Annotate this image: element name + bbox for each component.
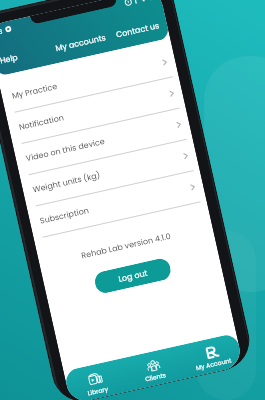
staticText: Library	[87, 384, 109, 397]
button[interactable]: My Account	[186, 341, 238, 373]
button[interactable]: Video on this device	[13, 107, 193, 177]
staticText: Clients	[144, 370, 167, 384]
staticText: My Practice	[11, 81, 59, 102]
staticText: Notification	[18, 112, 65, 133]
button[interactable]: Notification	[6, 76, 186, 146]
staticText: Rehab Lab version 4.1.0	[38, 221, 214, 271]
staticText: My accounts	[54, 32, 108, 54]
staticText: Subscription	[39, 205, 90, 227]
staticText: Contact us	[115, 20, 160, 41]
other: My Account	[205, 345, 219, 359]
button[interactable]: My accounts	[51, 29, 111, 57]
staticText: Video on this device	[25, 136, 106, 164]
button[interactable]: Contact us	[112, 18, 164, 43]
button[interactable]: Subscription	[27, 170, 207, 240]
staticText: Log out	[117, 268, 149, 285]
button[interactable]: Log out	[93, 257, 173, 295]
other: Clients	[146, 358, 160, 373]
other: Library	[88, 371, 103, 387]
staticText: My Account	[195, 355, 233, 372]
staticText: Help	[0, 52, 19, 67]
button[interactable]: Clients	[129, 354, 180, 386]
staticText: 7:33	[0, 26, 4, 38]
button[interactable]: Library	[70, 368, 122, 400]
staticText: Weight units (kg)	[32, 170, 102, 195]
button[interactable]: My Practice	[0, 45, 179, 115]
button[interactable]: Weight units (kg)	[20, 138, 200, 208]
button[interactable]: Help	[0, 49, 22, 69]
